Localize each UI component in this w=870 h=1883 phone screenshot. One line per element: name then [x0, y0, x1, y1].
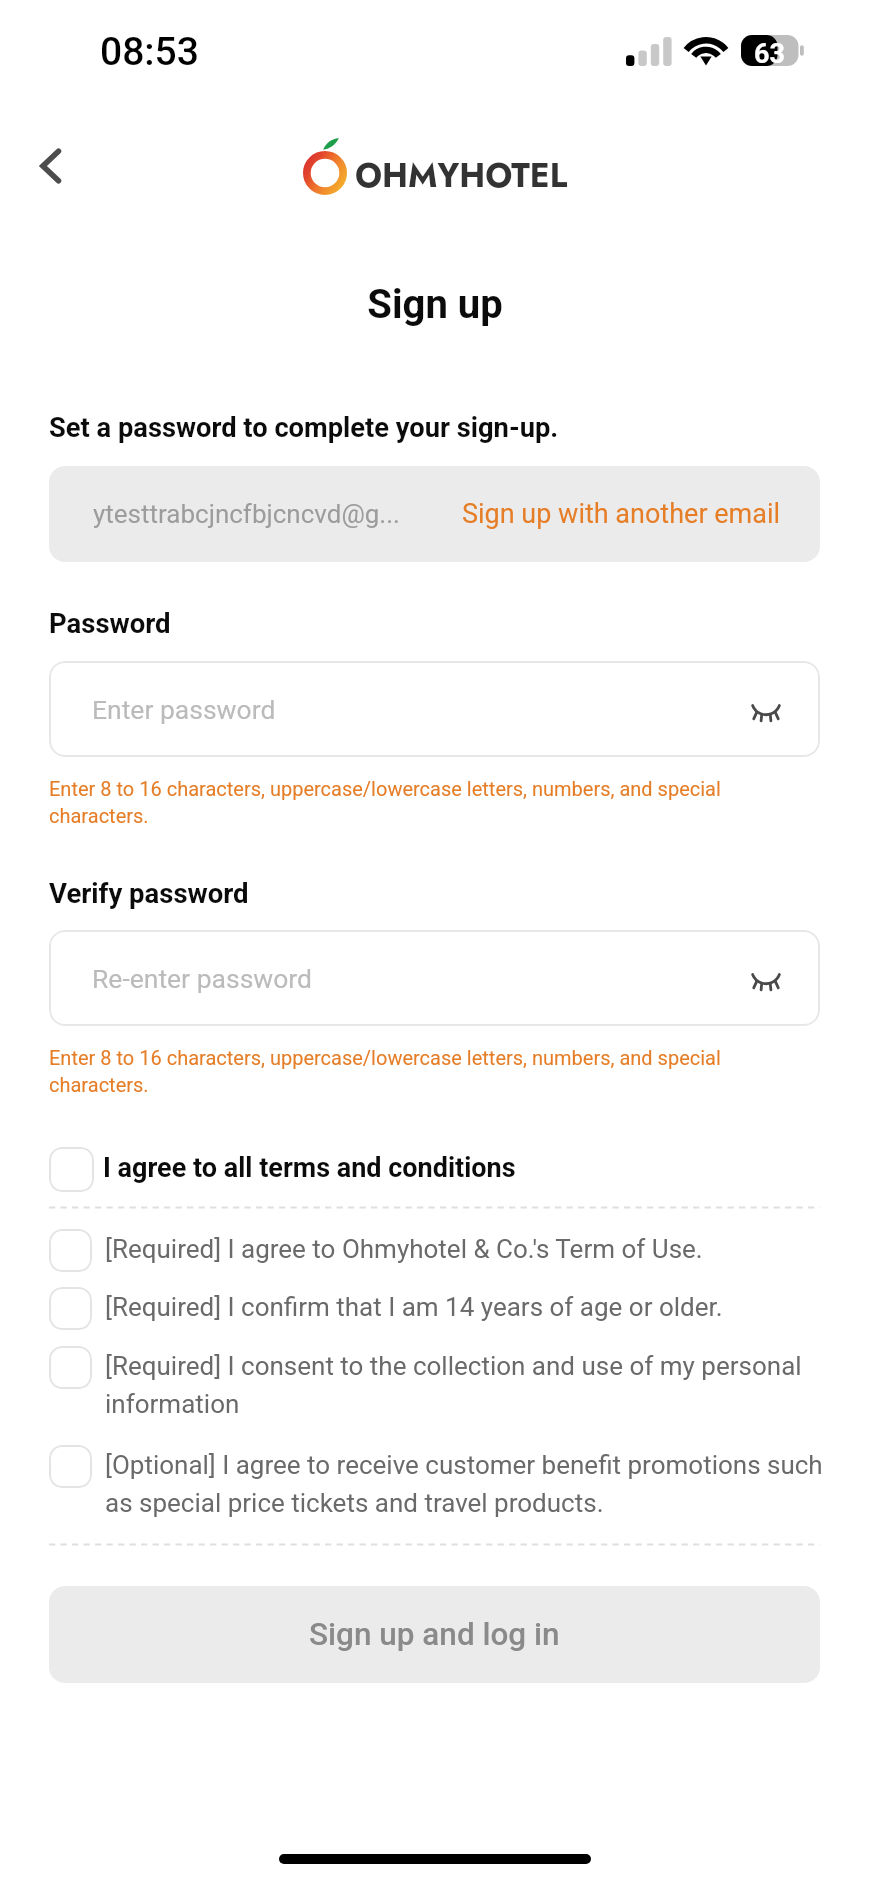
button[interactable]: [Required] I confirm that I am 14 years …: [49, 1287, 827, 1330]
staticText: [Required] I confirm that I am 14 years …: [105, 1292, 723, 1322]
staticText: Sign up: [0, 281, 870, 328]
staticText: Set a password to complete your sign-up.: [49, 412, 559, 444]
button[interactable]: ytesttrabcjncfbjcncvd@g...: [49, 466, 820, 562]
button[interactable]: Enter password: [49, 661, 820, 757]
staticText: [Optional] I agree to receive customer b…: [105, 1450, 827, 1518]
button[interactable]: [Optional] I agree to receive customer b…: [49, 1445, 827, 1513]
staticText: Password: [49, 607, 171, 639]
button[interactable]: Back: [20, 136, 80, 196]
staticText: Re-enter password: [92, 963, 313, 994]
staticText: 08:53: [100, 29, 199, 75]
staticText: Enter password: [92, 694, 276, 725]
button[interactable]: I agree to all terms and conditions: [49, 1146, 820, 1192]
staticText: [Required] I agree to Ohmyhotel & Co.'s …: [105, 1234, 703, 1264]
staticText: 63: [754, 38, 785, 69]
staticText: OHMYHOTEL: [355, 152, 568, 200]
staticText: Enter 8 to 16 characters, uppercase/lowe…: [49, 1046, 820, 1097]
button[interactable]: [Required] I consent to the collection a…: [49, 1346, 827, 1414]
staticText: Verify password: [49, 877, 249, 909]
button[interactable]: [Required] I agree to Ohmyhotel & Co.'s …: [49, 1229, 827, 1272]
staticText: Sign up and log in: [309, 1616, 560, 1653]
staticText: Enter 8 to 16 characters, uppercase/lowe…: [49, 777, 820, 828]
button[interactable]: Re-enter password: [49, 930, 820, 1026]
staticText: I agree to all terms and conditions: [103, 1152, 516, 1184]
staticText: Sign up with another email: [462, 498, 781, 530]
other: Show password: [746, 697, 786, 737]
other: Show password: [746, 966, 786, 1006]
staticText: [Required] I consent to the collection a…: [105, 1351, 827, 1419]
button[interactable]: Sign up and log in: [49, 1586, 820, 1683]
staticText: ytesttrabcjncfbjcncvd@g...: [93, 499, 400, 529]
